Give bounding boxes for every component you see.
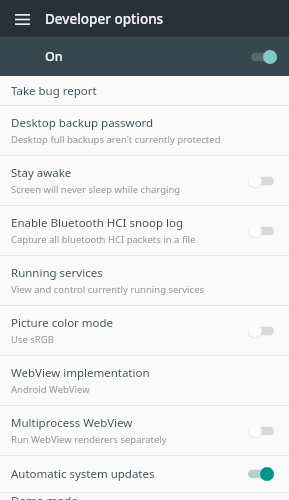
button[interactable]: Toggle Enable Bluetooth HCI snoop log	[244, 218, 278, 244]
button[interactable]: Toggle Multiprocess WebView	[244, 418, 278, 444]
button[interactable]: Multiprocess WebView	[0, 406, 289, 455]
staticText: Screen will never sleep while charging	[11, 183, 181, 196]
button[interactable]: Picture color mode	[0, 306, 289, 355]
button[interactable]: Stay awake	[0, 156, 289, 205]
button[interactable]: Toggle Stay awake	[244, 168, 278, 194]
button[interactable]: Desktop backup password	[0, 106, 289, 155]
staticText: Desktop full backups aren't currently pr…	[11, 133, 221, 146]
button[interactable]: WebView implementation	[0, 356, 289, 405]
staticText: Demo mode	[11, 493, 78, 500]
button[interactable]: Automatic system updates	[0, 456, 289, 492]
button[interactable]: Open navigation menu	[6, 3, 38, 35]
staticText: Running services	[11, 265, 103, 281]
button[interactable]: Toggle Automatic system updates	[244, 461, 278, 487]
staticText: Multiprocess WebView	[11, 415, 133, 431]
button[interactable]: Enable Bluetooth HCI snoop log	[0, 206, 289, 255]
button[interactable]: On	[0, 37, 289, 76]
staticText: Take bug report	[11, 83, 97, 99]
button[interactable]: Toggle Picture color mode	[244, 318, 278, 344]
staticText: Run WebView renderers separately	[11, 433, 167, 446]
staticText: Automatic system updates	[11, 466, 155, 482]
staticText: View and control currently running servi…	[11, 283, 205, 296]
staticText: Picture color mode	[11, 315, 114, 331]
button[interactable]: Running services	[0, 256, 289, 305]
staticText: WebView implementation	[11, 365, 150, 381]
staticText: Capture all bluetooth HCI packets in a f…	[11, 233, 196, 246]
staticText: Android WebView	[11, 383, 90, 396]
staticText: Desktop backup password	[11, 115, 154, 131]
button[interactable]: Demo mode	[0, 493, 289, 500]
staticText: Enable Bluetooth HCI snoop log	[11, 215, 184, 231]
staticText: On	[45, 48, 251, 65]
button[interactable]: Take bug report	[0, 76, 289, 105]
staticText: Stay awake	[11, 165, 72, 181]
staticText: Use sRGB	[11, 333, 54, 346]
staticText: Developer options	[45, 10, 164, 28]
